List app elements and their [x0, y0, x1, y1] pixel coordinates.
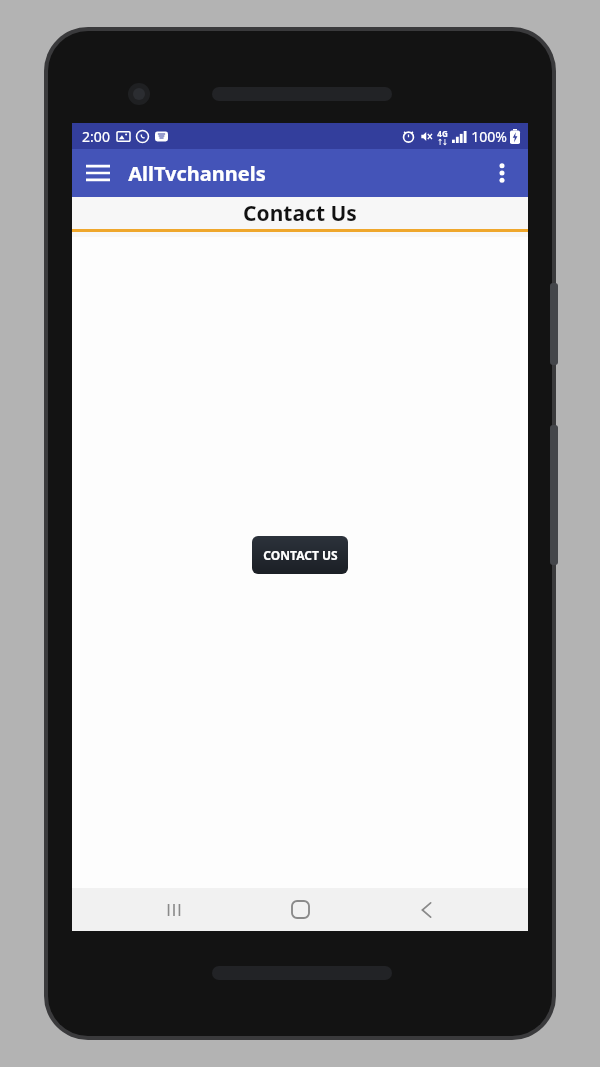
staticText: CONTACT US: [263, 547, 338, 563]
staticText: 100%: [471, 127, 507, 146]
button[interactable]: Open navigation menu: [78, 153, 118, 193]
staticText: 4G: [437, 128, 448, 139]
staticText: 2:00: [82, 127, 110, 146]
staticText: AllTvchannels: [128, 160, 266, 187]
button[interactable]: Recent apps: [150, 888, 198, 931]
button[interactable]: CONTACT US: [252, 536, 348, 574]
button[interactable]: Back: [402, 888, 450, 931]
button[interactable]: Home: [276, 888, 324, 931]
staticText: Contact Us: [243, 199, 357, 228]
button[interactable]: More options: [482, 153, 522, 193]
